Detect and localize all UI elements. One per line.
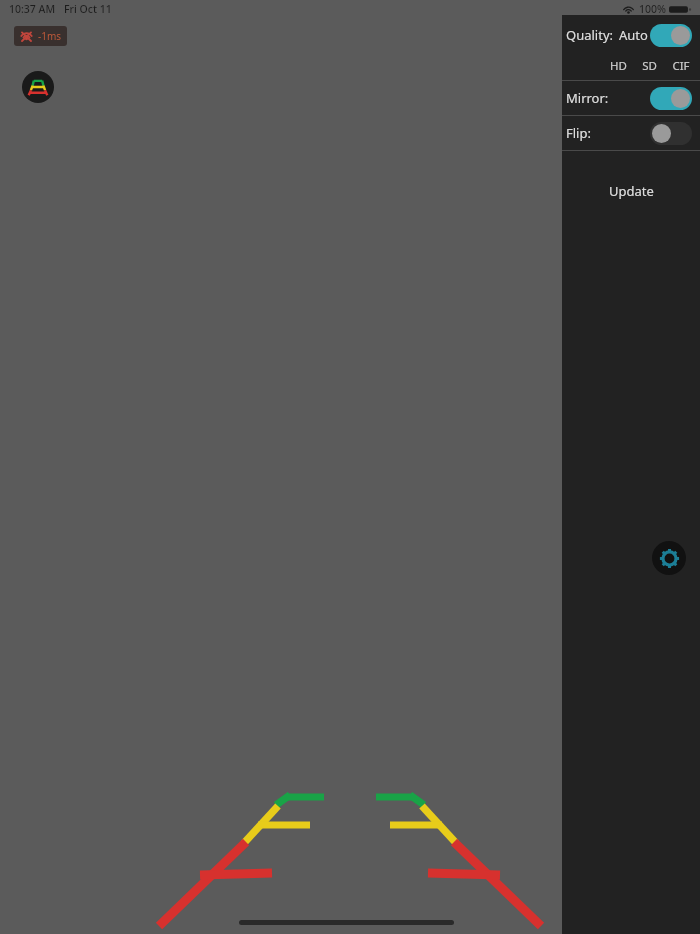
- button[interactable]: Flip:: [562, 116, 700, 150]
- button[interactable]: Quality:: [562, 15, 700, 55]
- button[interactable]: CIF: [670, 57, 692, 75]
- staticText: 10:37 AM: [9, 2, 56, 16]
- button[interactable]: Off: [650, 122, 692, 145]
- button[interactable]: Mirror:: [562, 81, 700, 115]
- staticText: 100%: [639, 2, 666, 16]
- button[interactable]: -1ms: [14, 26, 67, 46]
- button[interactable]: Settings: [652, 541, 686, 575]
- staticText: Mirror:: [566, 89, 609, 107]
- staticText: Flip:: [566, 124, 591, 142]
- staticText: HD: [610, 58, 627, 74]
- button[interactable]: HD: [608, 57, 629, 75]
- staticText: Fri Oct 11: [64, 2, 112, 16]
- staticText: Quality:: [566, 26, 613, 44]
- staticText: -1ms: [38, 29, 62, 43]
- staticText: Auto: [619, 26, 648, 44]
- button[interactable]: SD: [640, 57, 659, 75]
- button[interactable]: On: [650, 87, 692, 110]
- button[interactable]: Toggle parking guide lines: [22, 71, 54, 103]
- staticText: SD: [642, 58, 657, 74]
- button[interactable]: Update: [562, 151, 700, 231]
- staticText: Update: [609, 182, 654, 200]
- button[interactable]: On: [650, 24, 692, 47]
- staticText: CIF: [672, 58, 690, 74]
